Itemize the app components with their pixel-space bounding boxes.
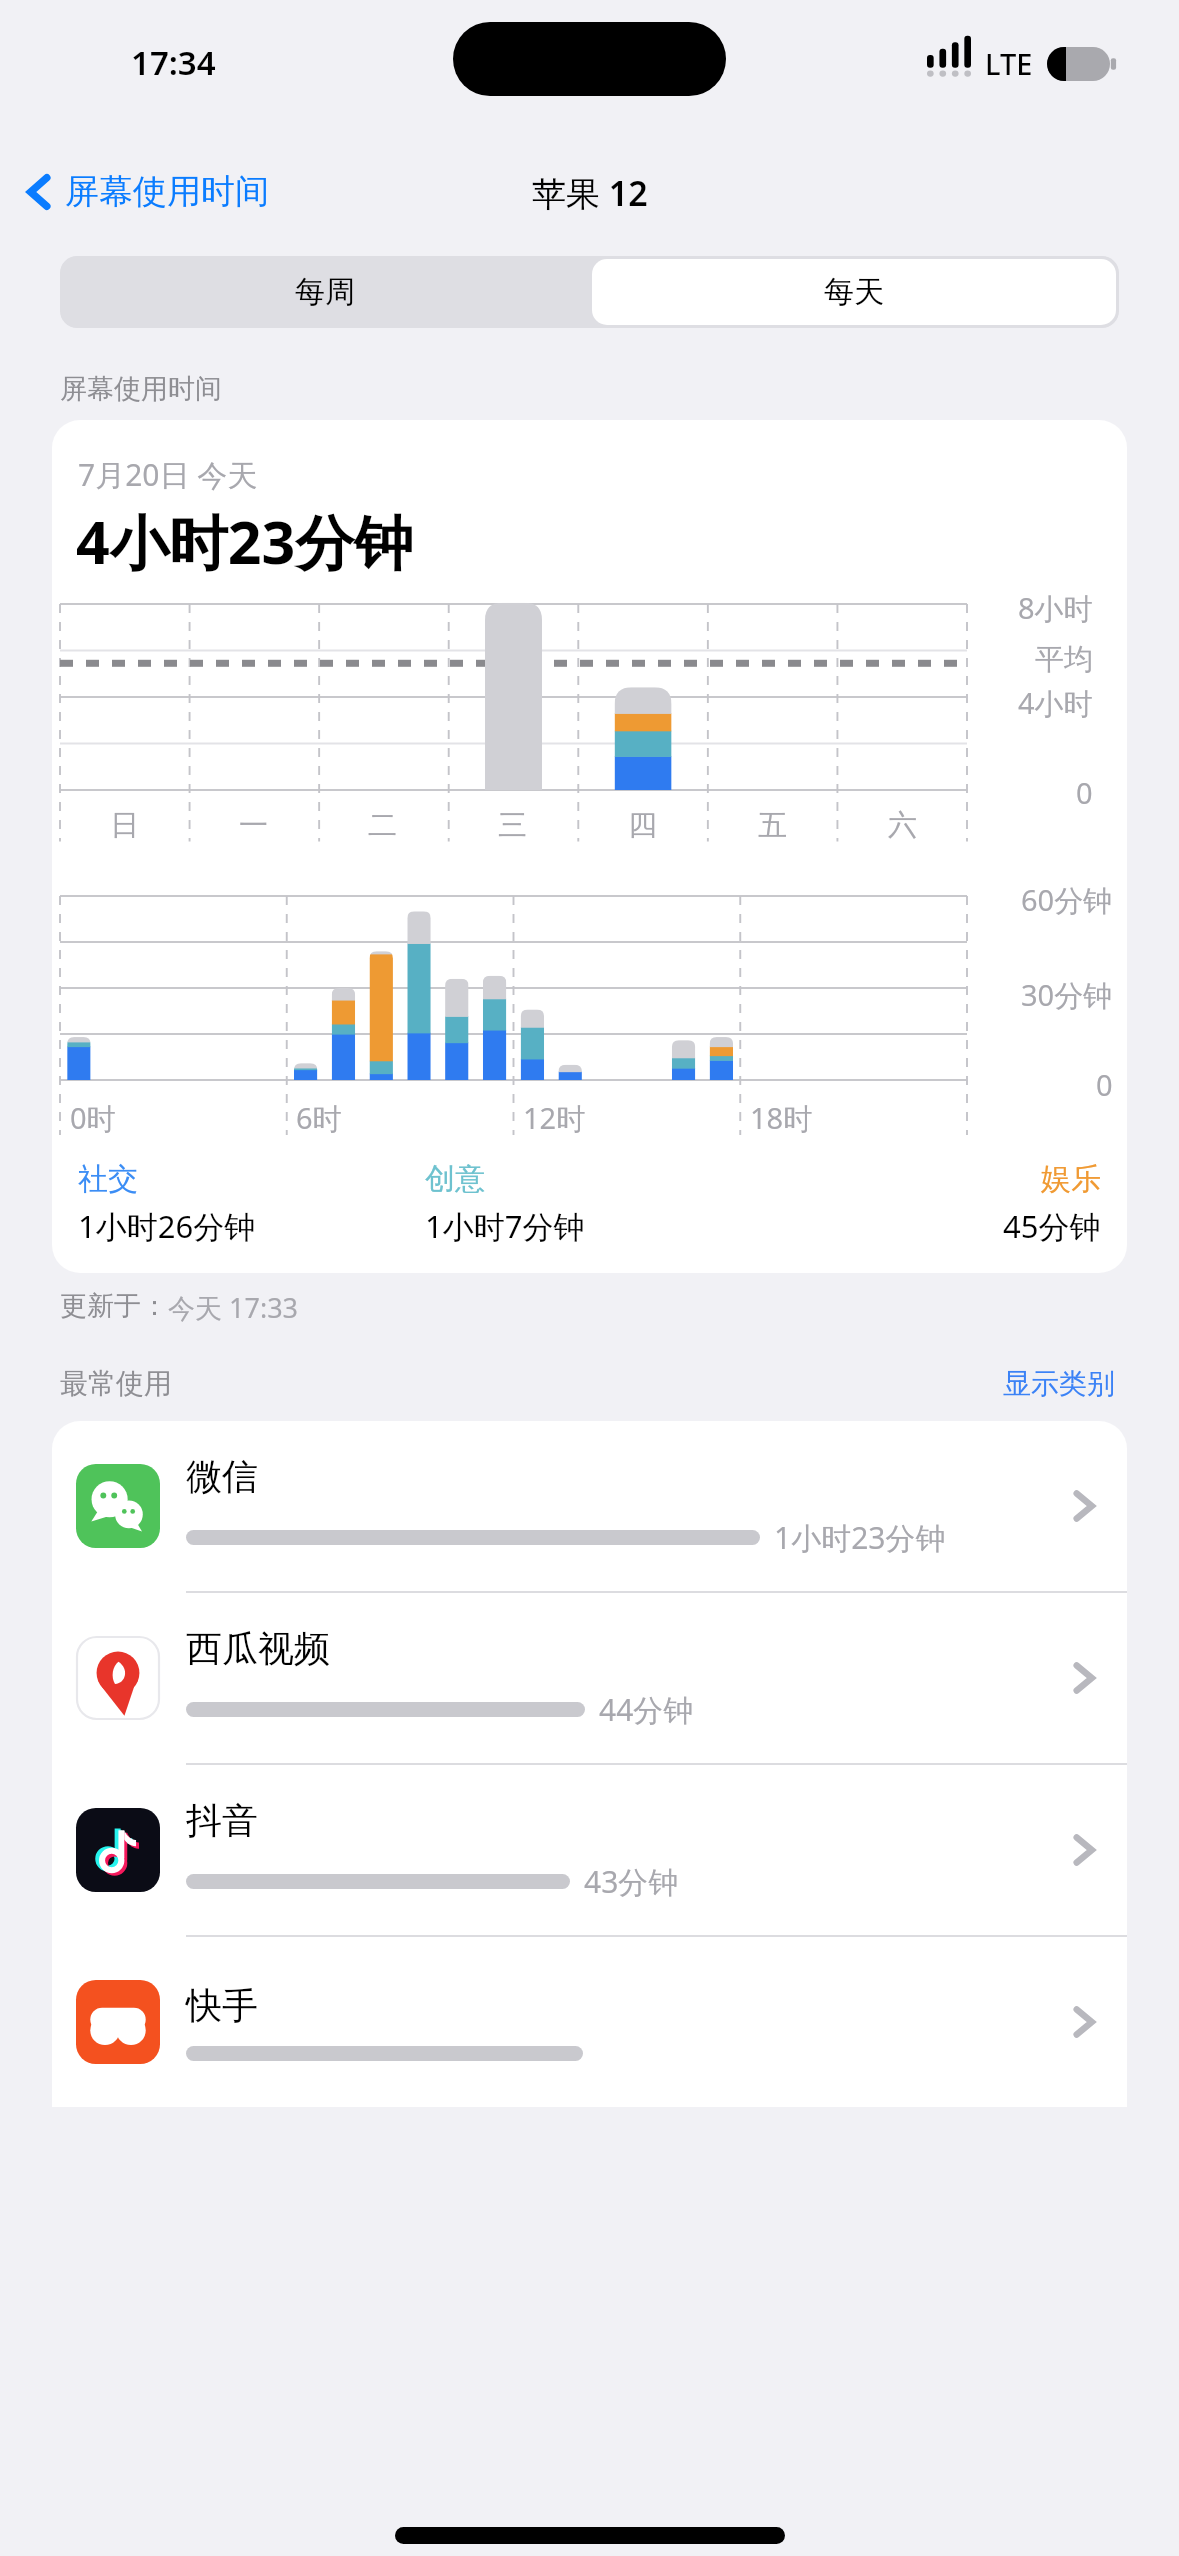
staticText: 快手	[186, 1983, 258, 2028]
staticText: 平均	[1035, 641, 1093, 678]
staticText: 显示类别	[1003, 1366, 1115, 1401]
button[interactable]: 社交	[78, 1160, 425, 1247]
staticText: 43分钟	[584, 1861, 679, 1902]
button[interactable]: 快手	[52, 1937, 1127, 2107]
other: Open details	[1071, 2001, 1097, 2043]
staticText: 12时	[523, 1098, 586, 1138]
button[interactable]: 显示类别	[997, 1360, 1121, 1407]
staticText: 0	[1096, 1065, 1113, 1104]
staticText: 抖音	[186, 1798, 258, 1843]
staticText: LTE	[985, 44, 1033, 83]
staticText: 17:34	[131, 40, 216, 85]
staticText: 三	[498, 807, 527, 844]
staticText: 6时	[296, 1098, 342, 1138]
staticText: 18时	[750, 1098, 813, 1138]
other: Back	[26, 171, 52, 213]
staticText: 五	[758, 807, 787, 844]
staticText: 二	[368, 807, 397, 844]
staticText: 44分钟	[599, 1689, 694, 1730]
staticText: 微信	[186, 1454, 258, 1499]
staticText: 一	[239, 807, 268, 844]
staticText: 4小时	[1018, 683, 1093, 723]
staticText: 更新于：	[60, 1289, 168, 1323]
staticText: 创意	[425, 1160, 485, 1198]
other: Open details	[1071, 1829, 1097, 1871]
staticText: 今天 17:33	[168, 1289, 299, 1326]
staticText: 60分钟	[1021, 880, 1113, 920]
staticText: 0	[1076, 773, 1093, 812]
button[interactable]: 每周	[60, 256, 589, 328]
staticText: 最常使用	[60, 1366, 172, 1401]
staticText: 45分钟	[1003, 1205, 1101, 1247]
staticText: 六	[888, 807, 917, 844]
staticText: 屏幕使用时间	[60, 372, 222, 406]
staticText: 0时	[70, 1098, 116, 1138]
staticText: 每周	[295, 273, 355, 311]
staticText: 西瓜视频	[186, 1626, 330, 1671]
button[interactable]: 抖音	[52, 1765, 1127, 1937]
button[interactable]: 微信	[52, 1421, 1127, 1593]
other: Open details	[1071, 1485, 1097, 1527]
button[interactable]: 创意	[425, 1160, 772, 1247]
staticText: 每天	[824, 273, 884, 311]
staticText: 1小时23分钟	[774, 1517, 946, 1558]
staticText: 4小时23分钟	[76, 501, 414, 582]
staticText: 屏幕使用时间	[65, 170, 269, 213]
button[interactable]: 每天	[592, 259, 1116, 325]
other: Open details	[1071, 1657, 1097, 1699]
staticText: 社交	[78, 1160, 138, 1198]
staticText: 1小时7分钟	[425, 1205, 585, 1247]
staticText: 7月20日 今天	[78, 454, 258, 495]
button[interactable]: Back	[0, 162, 285, 221]
staticText: 1小时26分钟	[78, 1205, 256, 1247]
staticText: 娱乐	[1041, 1160, 1101, 1198]
button[interactable]: 娱乐	[772, 1160, 1101, 1247]
staticText: 8小时	[1018, 588, 1093, 628]
staticText: 四	[628, 807, 657, 844]
button[interactable]: 西瓜视频	[52, 1593, 1127, 1765]
staticText: 日	[110, 807, 139, 844]
staticText: 30分钟	[1021, 975, 1113, 1015]
staticText: 苹果 12	[532, 170, 648, 216]
